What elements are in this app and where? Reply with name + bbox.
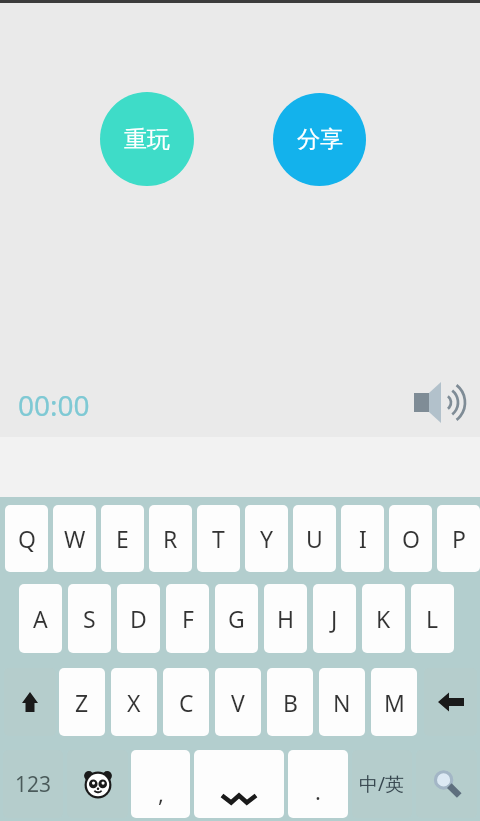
staticText: Q (18, 523, 36, 554)
staticText: R (163, 523, 178, 554)
button[interactable]: H (264, 584, 307, 653)
staticText: A (33, 603, 48, 634)
button[interactable]: T (197, 505, 240, 572)
button[interactable]: M (371, 668, 417, 736)
staticText: 分享 (297, 125, 343, 154)
button[interactable]: Z (59, 668, 105, 736)
button[interactable]: D (117, 584, 160, 653)
button[interactable]: Period (288, 750, 348, 818)
button[interactable]: V (215, 668, 261, 736)
staticText: . (315, 776, 321, 806)
button[interactable]: 123 (3, 750, 63, 818)
button[interactable]: F (166, 584, 209, 653)
staticText: , (158, 778, 164, 808)
staticText: I (359, 523, 367, 554)
staticText: B (283, 687, 298, 718)
staticText: U (306, 523, 323, 554)
button[interactable]: I (341, 505, 384, 572)
button[interactable]: X (111, 668, 157, 736)
staticText: F (182, 603, 194, 634)
button[interactable]: A (19, 584, 62, 653)
staticText: S (83, 603, 96, 634)
button[interactable]: E (101, 505, 144, 572)
button[interactable]: Space (194, 750, 284, 818)
staticText: H (277, 603, 295, 634)
staticText: G (228, 603, 245, 634)
staticText: P (452, 523, 466, 554)
button[interactable]: B (267, 668, 313, 736)
button[interactable]: S (68, 584, 111, 653)
staticText: W (64, 523, 86, 554)
staticText: O (402, 523, 420, 554)
button[interactable]: C (163, 668, 209, 736)
staticText: T (212, 523, 225, 554)
button[interactable]: N (319, 668, 365, 736)
button[interactable]: P (437, 505, 480, 572)
button[interactable]: Comma (131, 750, 190, 818)
button[interactable]: K (362, 584, 405, 653)
button[interactable]: Backspace (424, 668, 477, 736)
button[interactable]: O (389, 505, 432, 572)
staticText: M (384, 687, 405, 718)
staticText: X (127, 687, 141, 718)
button[interactable]: G (215, 584, 258, 653)
staticText: J (331, 603, 338, 634)
button[interactable]: Y (245, 505, 288, 572)
staticText: 重玩 (124, 125, 170, 154)
button[interactable]: R (149, 505, 192, 572)
button[interactable]: W (53, 505, 96, 572)
staticText: Z (75, 687, 89, 718)
button[interactable]: U (293, 505, 336, 572)
button[interactable]: Shift (4, 668, 56, 736)
staticText: 00:00 (18, 386, 90, 422)
button[interactable]: L (411, 584, 454, 653)
button[interactable]: Emoji (67, 750, 128, 818)
button[interactable]: Q (5, 505, 48, 572)
staticText: V (231, 687, 245, 718)
staticText: 中/英 (359, 771, 405, 797)
staticText: D (130, 603, 147, 634)
staticText: L (426, 603, 439, 634)
button[interactable]: J (313, 584, 356, 653)
staticText: E (116, 523, 129, 554)
button[interactable]: 中/英 (352, 750, 412, 818)
staticText: C (179, 687, 194, 718)
button[interactable]: 重玩 (100, 92, 194, 186)
staticText: Y (260, 523, 274, 554)
button[interactable]: Search (416, 750, 477, 818)
button[interactable]: Sound (410, 379, 468, 425)
button[interactable]: 分享 (273, 93, 366, 186)
staticText: K (376, 603, 391, 634)
staticText: 123 (15, 770, 52, 799)
staticText: N (333, 687, 351, 718)
button[interactable]: 00:00 (18, 386, 110, 422)
